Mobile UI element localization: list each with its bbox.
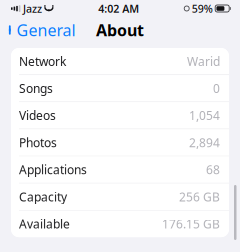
button[interactable]: Available — [11, 211, 229, 237]
staticText: Photos — [19, 135, 57, 150]
staticText: 256 GB — [179, 189, 220, 205]
staticText: Songs — [19, 80, 53, 96]
staticText: Warid — [187, 53, 220, 69]
button[interactable]: Network — [11, 48, 229, 75]
staticText: General — [16, 19, 75, 41]
staticText: Network — [19, 53, 66, 69]
staticText: 0 — [213, 80, 220, 96]
staticText: Capacity — [19, 189, 67, 205]
staticText: 59% — [192, 1, 213, 16]
staticText: Videos — [19, 107, 56, 123]
staticText: About — [96, 19, 144, 41]
button[interactable]: Capacity — [11, 183, 229, 211]
staticText: Available — [19, 216, 70, 232]
staticText: 1,054 — [189, 107, 220, 123]
button[interactable]: Applications — [11, 156, 229, 183]
staticText: Applications — [19, 162, 87, 178]
staticText: Jazz — [23, 1, 42, 16]
button[interactable]: General — [0, 15, 75, 45]
staticText: 2,894 — [189, 135, 220, 150]
staticText: 4:02 AM — [98, 1, 139, 16]
button[interactable]: Songs — [11, 75, 229, 102]
button[interactable]: Videos — [11, 102, 229, 129]
staticText: 176.15 GB — [162, 216, 220, 232]
staticText: 68 — [206, 162, 220, 178]
button[interactable]: Photos — [11, 129, 229, 156]
